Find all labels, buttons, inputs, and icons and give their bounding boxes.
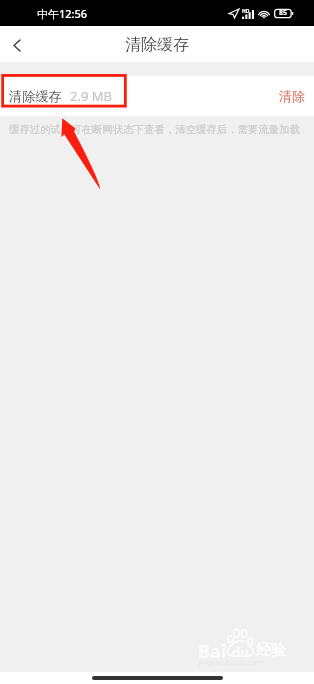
staticText: 经验: [256, 641, 286, 660]
button[interactable]: 清除缓存: [0, 76, 314, 116]
staticText: HD: [242, 8, 250, 15]
staticText: 缓存过的试题可在断网状态下查看，清空缓存后，需要流量加载: [9, 123, 300, 136]
staticText: 中午12:56: [37, 6, 88, 21]
staticText: 85: [279, 8, 288, 18]
staticText: Bai: [198, 639, 227, 664]
staticText: 清除: [279, 88, 305, 104]
staticText: 2.9 MB: [70, 87, 112, 105]
staticText: jingyan.baidu.com: [198, 657, 263, 667]
staticText: 清除缓存: [125, 35, 189, 55]
button[interactable]: Back: [0, 26, 34, 62]
staticText: du: [232, 643, 249, 661]
staticText: 清除缓存: [9, 88, 62, 105]
